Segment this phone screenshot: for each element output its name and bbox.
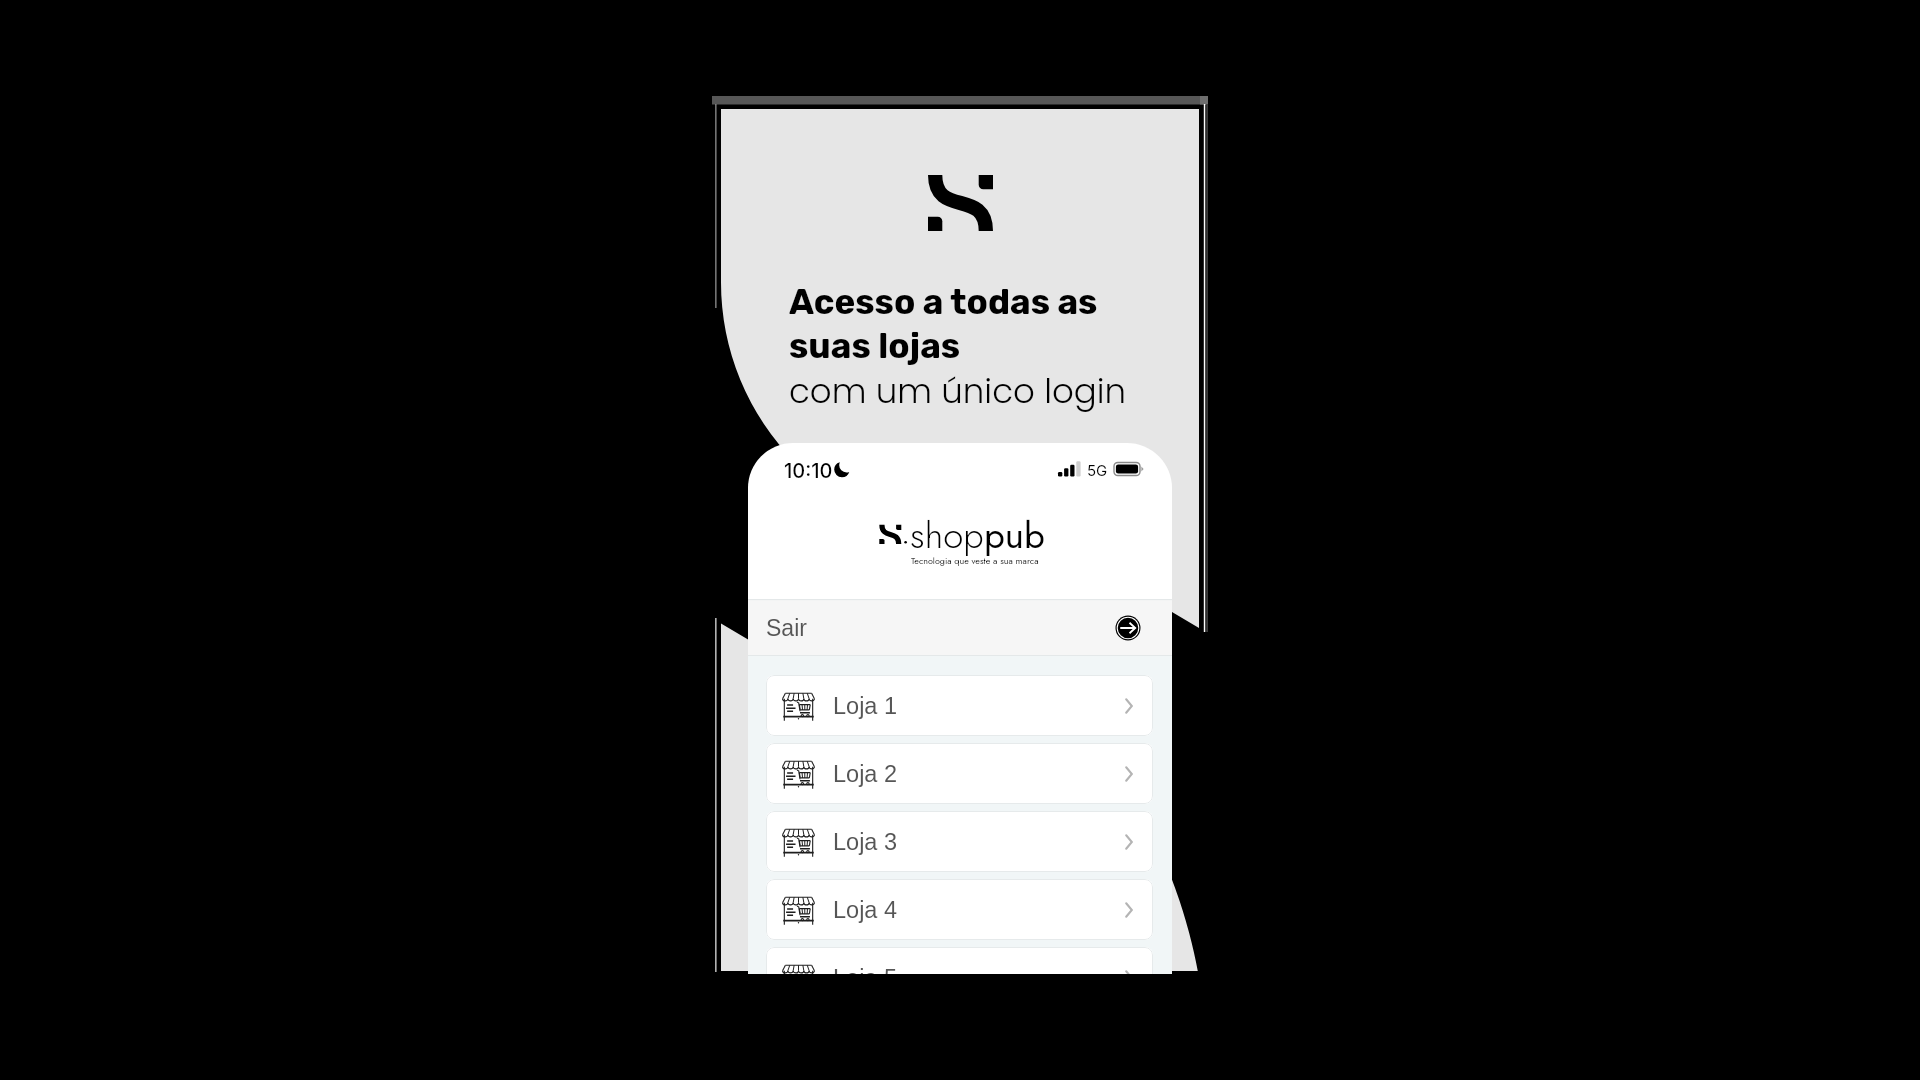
staticText: shop bbox=[910, 509, 984, 562]
staticText: Loja 3 bbox=[833, 829, 898, 855]
staticText: com um único login bbox=[789, 367, 1127, 415]
button[interactable]: Sair bbox=[748, 600, 1172, 655]
staticText: Loja 2 bbox=[833, 761, 898, 787]
staticText: Loja 5 bbox=[833, 965, 898, 974]
button[interactable]: Loja 1 bbox=[766, 675, 1153, 736]
staticText: 10:10 bbox=[784, 459, 833, 483]
button[interactable]: Loja 3 bbox=[766, 811, 1153, 872]
staticText: Loja 4 bbox=[833, 897, 898, 923]
staticText: Tecnologia que veste a sua marca bbox=[911, 554, 1039, 567]
staticText: 5G bbox=[1087, 461, 1108, 479]
staticText: pub bbox=[984, 509, 1045, 562]
staticText: suas lojas bbox=[789, 325, 961, 366]
button[interactable]: Loja 5 bbox=[766, 947, 1153, 974]
button[interactable]: Sair bbox=[1115, 615, 1141, 641]
staticText: Acesso a todas as bbox=[789, 281, 1098, 322]
staticText: Sair bbox=[766, 615, 807, 641]
button[interactable]: Loja 4 bbox=[766, 879, 1153, 940]
button[interactable]: Loja 2 bbox=[766, 743, 1153, 804]
staticText: Loja 1 bbox=[833, 693, 898, 719]
